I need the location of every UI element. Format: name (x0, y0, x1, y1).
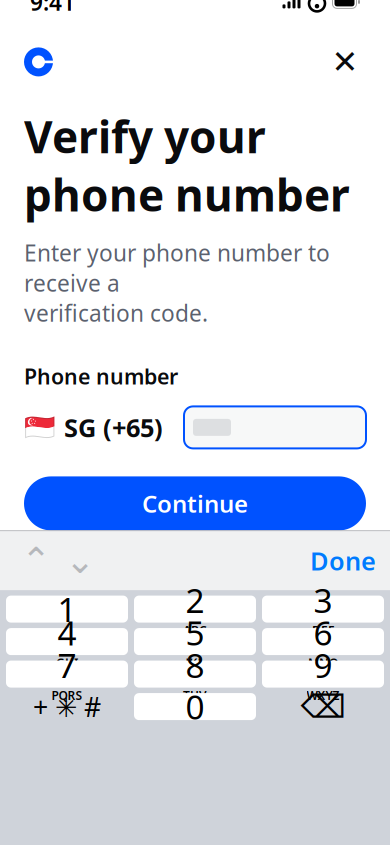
staticText: 1 (57, 587, 76, 631)
staticText: MNO (308, 655, 338, 671)
button[interactable]: Plus star pound (6, 693, 128, 720)
button[interactable]: Continue (24, 476, 366, 530)
staticText: 9 (313, 643, 332, 687)
staticText: Verify your phone number (24, 107, 350, 224)
staticText: Continue (142, 487, 248, 519)
staticText: JKL (185, 655, 204, 671)
button[interactable]: Done (310, 540, 376, 582)
staticText: 0 (185, 684, 204, 729)
staticText: PQRS (51, 687, 82, 703)
button[interactable]: Delete (262, 693, 384, 720)
button[interactable]: 5 (134, 628, 256, 655)
button[interactable]: 🇸🇬 (24, 406, 163, 448)
button[interactable]: 6 (262, 628, 384, 655)
button[interactable]: Next field (58, 540, 102, 582)
button[interactable]: 8 (134, 661, 256, 688)
button[interactable]: 1 (6, 596, 128, 623)
staticText: 3 (313, 578, 332, 622)
staticText: DEF (312, 622, 334, 638)
staticText: + ✳ # (33, 689, 101, 724)
button[interactable]: 7 (6, 661, 128, 688)
staticText: 🇸🇬 (24, 413, 56, 442)
staticText: 9:41 (30, 0, 75, 17)
staticText: Done (310, 544, 376, 577)
button[interactable]: 4 (6, 628, 128, 655)
staticText: Phone number (24, 362, 178, 390)
button[interactable]: 2 (134, 596, 256, 623)
staticText: ABC (183, 622, 207, 638)
staticText: WXYZ (306, 687, 339, 703)
staticText: 5 (185, 610, 204, 655)
button[interactable]: Previous field (14, 540, 58, 582)
button[interactable]: 0 (134, 693, 256, 720)
staticText: SG (+65) (64, 411, 163, 444)
staticText: 6 (313, 610, 332, 655)
staticText: 7 (57, 643, 76, 687)
staticText: ✕ (331, 44, 358, 80)
button[interactable]: 9 (262, 661, 384, 688)
staticText: ⌄ (65, 540, 95, 581)
staticText: 4 (57, 610, 76, 655)
staticText: ⌃ (21, 540, 51, 581)
staticText: Enter your phone number to receive a ver… (24, 238, 330, 328)
button[interactable]: 3 (262, 596, 384, 623)
staticText: ⌫ (300, 688, 345, 725)
button[interactable]: Phone number (184, 406, 366, 448)
staticText: GHI (56, 655, 78, 671)
staticText: 2 (185, 578, 204, 622)
button[interactable]: Close (324, 41, 366, 83)
staticText: 8 (185, 643, 204, 687)
staticText: TUV (183, 687, 207, 703)
